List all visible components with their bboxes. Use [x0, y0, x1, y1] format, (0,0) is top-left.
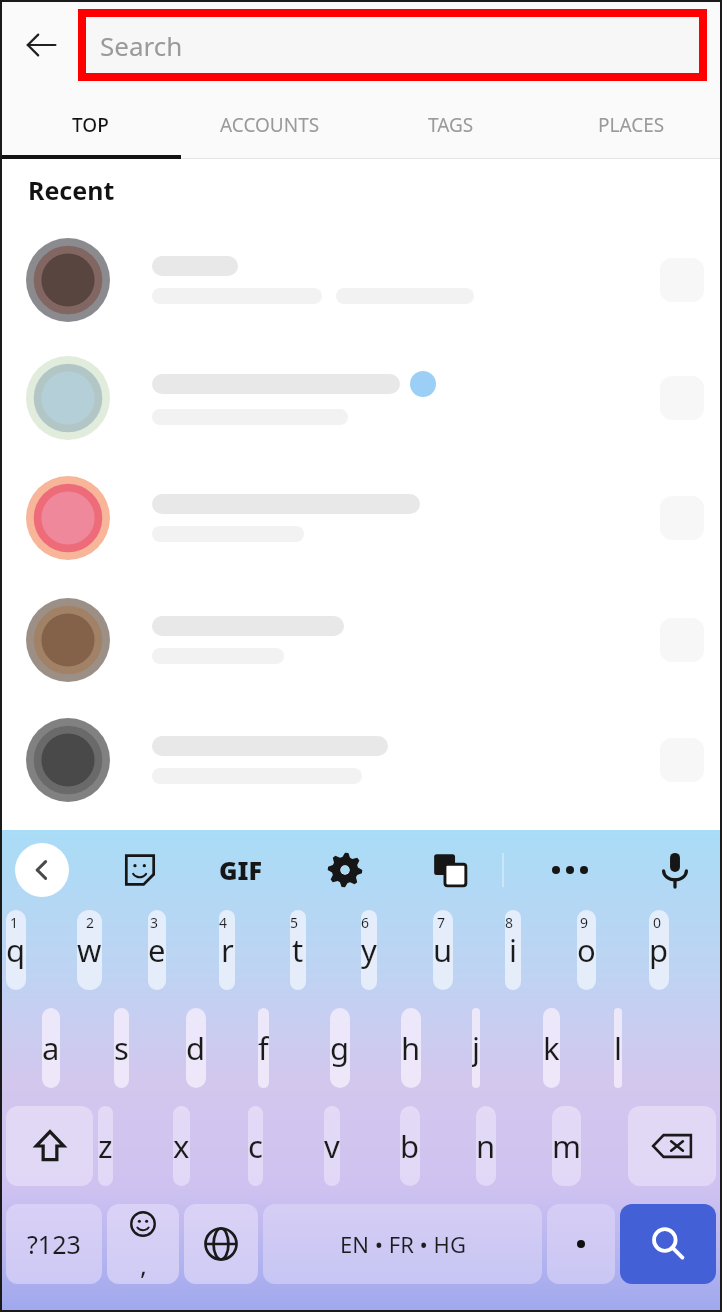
staticText: 3 — [150, 913, 159, 932]
button[interactable]: f — [258, 1008, 269, 1088]
button[interactable]: TOP — [0, 90, 180, 159]
staticText: m — [552, 1125, 581, 1167]
button[interactable]: Backspace — [628, 1106, 716, 1186]
button[interactable]: Settings — [292, 830, 398, 910]
staticText: 2 — [86, 913, 95, 932]
button[interactable]: n — [476, 1106, 496, 1186]
staticText: Recent — [28, 173, 115, 207]
button[interactable]: Emoji and comma — [107, 1204, 179, 1284]
button[interactable]: i — [505, 910, 521, 990]
button[interactable]: k — [543, 1008, 560, 1088]
staticText: f — [258, 1027, 269, 1069]
button[interactable]: t — [290, 910, 306, 990]
button[interactable]: p — [649, 910, 669, 990]
staticText: u — [433, 929, 453, 971]
button[interactable]: e — [148, 910, 166, 990]
staticText: 7 — [437, 913, 446, 932]
button[interactable]: Change language — [184, 1204, 258, 1284]
staticText: 6 — [361, 913, 370, 932]
button[interactable]: Translate — [398, 830, 502, 910]
button[interactable]: Shift — [6, 1106, 93, 1186]
button[interactable]: c — [248, 1106, 263, 1186]
button[interactable]: s — [114, 1008, 129, 1088]
staticText: o — [577, 929, 596, 971]
button[interactable]: d — [186, 1008, 206, 1088]
button[interactable]: Remove — [0, 457, 722, 579]
staticText: b — [400, 1125, 420, 1167]
button[interactable]: l — [614, 1008, 622, 1088]
button[interactable]: z — [98, 1106, 113, 1186]
button[interactable]: x — [173, 1106, 190, 1186]
staticText: p — [649, 929, 669, 971]
button[interactable]: w — [77, 910, 102, 990]
staticText: i — [509, 929, 517, 971]
button[interactable]: TAGS — [360, 90, 541, 159]
staticText: q — [6, 929, 26, 971]
button[interactable]: EN • FR • HG — [263, 1204, 542, 1284]
staticText: r — [221, 929, 234, 971]
button[interactable]: g — [330, 1008, 350, 1088]
staticText: ?123 — [27, 1227, 81, 1261]
button[interactable]: Collapse toolbar — [15, 843, 69, 897]
staticText: 9 — [580, 913, 589, 932]
button[interactable]: r — [219, 910, 235, 990]
staticText: d — [186, 1027, 206, 1069]
button[interactable]: v — [324, 1106, 340, 1186]
button[interactable]: Back — [10, 14, 72, 76]
staticText: , — [140, 1247, 147, 1282]
staticText: v — [324, 1125, 340, 1167]
staticText: y — [361, 929, 377, 971]
staticText: TAGS — [428, 112, 474, 138]
button[interactable]: Remove — [0, 221, 722, 339]
button[interactable]: PLACES — [541, 90, 722, 159]
button[interactable]: q — [6, 910, 26, 990]
staticText: a — [42, 1027, 60, 1069]
staticText: Search — [100, 28, 183, 63]
button[interactable]: u — [433, 910, 453, 990]
button[interactable]: a — [42, 1008, 60, 1088]
staticText: k — [543, 1027, 560, 1069]
staticText: w — [77, 929, 102, 971]
button[interactable]: h — [401, 1008, 421, 1088]
button[interactable]: ?123 — [6, 1204, 102, 1284]
staticText: 4 — [219, 913, 228, 932]
staticText: ACCOUNTS — [220, 112, 320, 138]
button[interactable]: Search — [86, 17, 699, 73]
staticText: TOP — [72, 112, 109, 138]
button[interactable]: Stickers — [92, 830, 188, 910]
button[interactable]: Remove — [0, 579, 722, 701]
button[interactable]: b — [400, 1106, 420, 1186]
staticText: n — [476, 1125, 496, 1167]
button[interactable]: j — [472, 1008, 480, 1088]
staticText: x — [173, 1125, 190, 1167]
staticText: s — [114, 1027, 129, 1069]
button[interactable]: y — [361, 910, 377, 990]
button[interactable]: GIF — [188, 830, 292, 910]
staticText: GIF — [219, 853, 262, 887]
button[interactable]: Remove — [0, 701, 722, 819]
staticText: g — [330, 1027, 350, 1069]
button[interactable]: Remove — [0, 339, 722, 457]
button[interactable]: Search — [620, 1204, 716, 1284]
button[interactable]: Voice input — [636, 830, 714, 910]
button[interactable]: Period — [547, 1204, 615, 1284]
staticText: j — [472, 1027, 480, 1069]
button[interactable]: o — [577, 910, 596, 990]
staticText: EN • FR • HG — [340, 1229, 466, 1259]
staticText: 0 — [653, 913, 662, 932]
staticText: 5 — [290, 913, 299, 932]
staticText: t — [292, 929, 304, 971]
staticText: 1 — [10, 913, 19, 932]
staticText: PLACES — [598, 112, 665, 138]
staticText: 8 — [505, 913, 514, 932]
staticText: l — [614, 1027, 622, 1069]
button[interactable]: m — [552, 1106, 581, 1186]
button[interactable]: ACCOUNTS — [180, 90, 360, 159]
staticText: c — [248, 1125, 263, 1167]
button[interactable]: More options — [504, 830, 636, 910]
